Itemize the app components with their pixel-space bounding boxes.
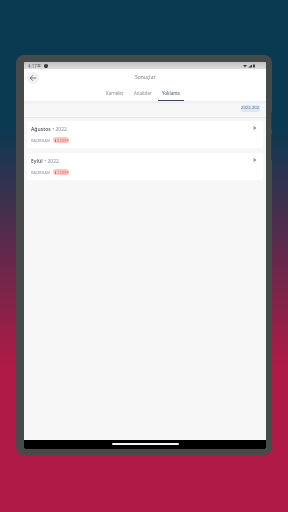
staticText: Sonuçlar: [135, 74, 156, 81]
staticText: KAÇIRILAN: [31, 170, 50, 175]
staticText: • 2022: [43, 158, 59, 165]
button[interactable]: Analizler: [129, 90, 157, 101]
button[interactable]: Eylül: [27, 153, 263, 180]
staticText: 4 DERS: [57, 138, 69, 143]
button[interactable]: Back: [27, 72, 39, 84]
staticText: • 2022: [51, 126, 67, 133]
staticText: 2022-2023: [241, 105, 260, 112]
staticText: 1 DERS: [57, 170, 69, 175]
staticText: Ağustos: [31, 126, 51, 133]
button[interactable]: Yoklama: [157, 90, 185, 101]
button[interactable]: 2022-2023: [241, 105, 260, 112]
button[interactable]: Ağustos: [27, 121, 263, 148]
button[interactable]: Karneler: [101, 90, 129, 101]
staticText: KAÇIRILAN: [31, 138, 50, 143]
staticText: Analizler: [134, 90, 152, 96]
staticText: Yoklama: [162, 90, 180, 96]
staticText: Karneler: [106, 90, 124, 96]
staticText: Eylül: [31, 158, 43, 165]
staticText: 4:17: [28, 63, 37, 69]
